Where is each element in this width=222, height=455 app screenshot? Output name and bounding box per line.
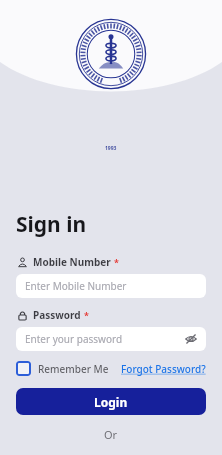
staticText: * (84, 309, 89, 321)
staticText: Or (104, 427, 118, 442)
staticText: Enter Mobile Number (25, 279, 127, 293)
button[interactable]: Enter your password (16, 327, 206, 351)
staticText: Mobile Number (33, 255, 111, 269)
button[interactable]: Forgot Password? (121, 362, 206, 376)
button[interactable]: Enter Mobile Number (16, 274, 206, 298)
button[interactable]: Remember Me (16, 361, 109, 376)
staticText: Forgot Password? (121, 362, 206, 376)
staticText: Password (33, 308, 81, 322)
button[interactable]: Login (16, 388, 206, 415)
staticText: * (114, 256, 119, 268)
staticText: Login (94, 394, 128, 410)
staticText: 1993 (105, 145, 117, 152)
staticText: Sign in (16, 210, 87, 239)
staticText: Remember Me (38, 362, 109, 376)
staticText: Enter your password (25, 332, 123, 346)
